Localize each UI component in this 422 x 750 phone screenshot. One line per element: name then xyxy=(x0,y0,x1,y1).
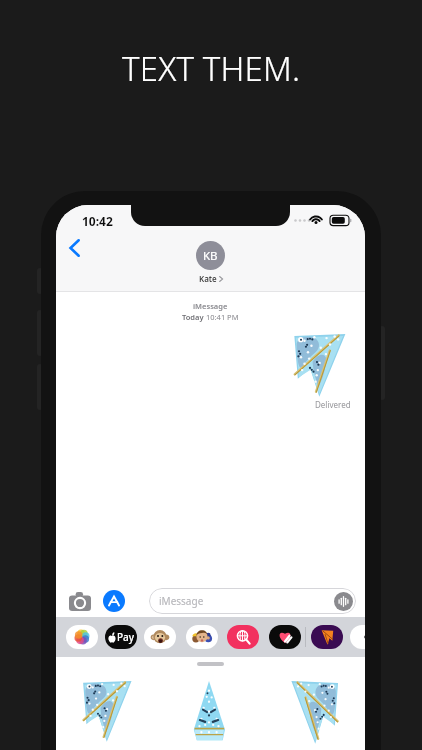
button[interactable]: Sticker app xyxy=(311,625,343,649)
staticText: iMessage xyxy=(193,301,228,311)
button[interactable]: Sticker xyxy=(289,680,342,744)
other: Audio message xyxy=(334,592,353,611)
button[interactable]: Sticker xyxy=(190,681,228,742)
button[interactable]: App Store xyxy=(101,588,127,614)
button[interactable]: Photos xyxy=(66,625,98,649)
button[interactable]: Sticker xyxy=(79,680,134,742)
button[interactable]: Hearts xyxy=(269,625,301,649)
button[interactable]: KB xyxy=(196,241,225,284)
button[interactable]: More apps xyxy=(350,625,365,649)
button[interactable]: Search GIFs xyxy=(227,625,259,649)
staticText: TEXT THEM. xyxy=(122,46,301,91)
staticText: 10:41 PM xyxy=(206,312,239,322)
button[interactable]: iMessage xyxy=(149,588,356,614)
staticText: Pay xyxy=(117,630,135,644)
staticText: Today xyxy=(182,312,206,322)
button[interactable]: Camera xyxy=(67,590,93,612)
button[interactable]: Memoji Stickers xyxy=(186,625,218,649)
button[interactable]: Back xyxy=(59,233,89,263)
staticText: Kate xyxy=(199,273,217,284)
staticText: Delivered xyxy=(315,399,351,410)
staticText: 10:42 xyxy=(82,213,113,229)
button[interactable]: Apple Pay xyxy=(105,625,137,649)
staticText: KB xyxy=(203,248,218,264)
staticText: iMessage xyxy=(159,594,204,608)
button[interactable]: Memoji xyxy=(144,625,176,649)
